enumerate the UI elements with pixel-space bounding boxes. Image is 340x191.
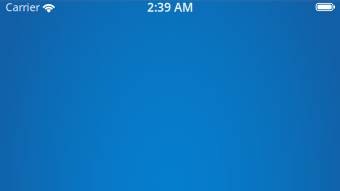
staticText: 2:39 AM [147,0,193,15]
staticText: Carrier [5,0,39,14]
